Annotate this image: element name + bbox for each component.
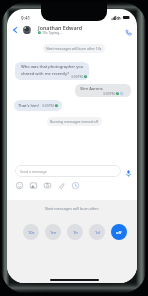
button[interactable]: 1m <box>45 224 61 240</box>
button[interactable]: Emoji <box>16 182 23 189</box>
staticText: 10s Typing... <box>42 30 62 35</box>
staticText: 3:00PM <box>42 103 54 108</box>
staticText: Who was that photographer you shared wit… <box>21 64 84 76</box>
staticText: Jonathan Edward <box>38 24 83 31</box>
staticText: 1m <box>50 230 57 235</box>
button[interactable]: Send a message <box>15 165 121 177</box>
button[interactable]: Back <box>10 25 19 34</box>
button[interactable]: Call <box>123 27 133 37</box>
button[interactable]: Photos <box>30 182 37 189</box>
staticText: off <box>116 230 122 235</box>
button[interactable]: Camera <box>44 182 51 189</box>
staticText: Next messages will burn after: <box>45 206 100 211</box>
staticText: Next messages will burn after 10s <box>46 46 102 51</box>
button[interactable]: Burn timer <box>72 182 79 189</box>
staticText: Send a message <box>20 169 47 174</box>
button[interactable]: Voice message <box>124 169 132 177</box>
button[interactable]: 10s <box>23 224 39 240</box>
staticText: Slim Aarons <box>80 86 103 92</box>
button[interactable]: off <box>111 224 127 240</box>
button[interactable]: Who was that photographer you shared wit… <box>15 62 89 80</box>
staticText: 9:41 <box>21 15 31 21</box>
staticText: 3:00PM <box>71 74 83 79</box>
button[interactable]: 1d <box>89 224 105 240</box>
staticText: Burning messages turned off <box>50 119 99 124</box>
button[interactable]: That's him! <box>14 100 62 111</box>
staticText: That's him! <box>18 103 40 109</box>
staticText: 3:00PM <box>103 91 115 96</box>
button[interactable]: Attachment <box>58 182 65 189</box>
staticText: 1h <box>73 230 78 235</box>
staticText: 1d <box>95 230 100 235</box>
staticText: 10s <box>28 230 35 235</box>
button[interactable]: 1h <box>67 224 83 240</box>
button[interactable]: Slim Aarons <box>75 84 131 97</box>
